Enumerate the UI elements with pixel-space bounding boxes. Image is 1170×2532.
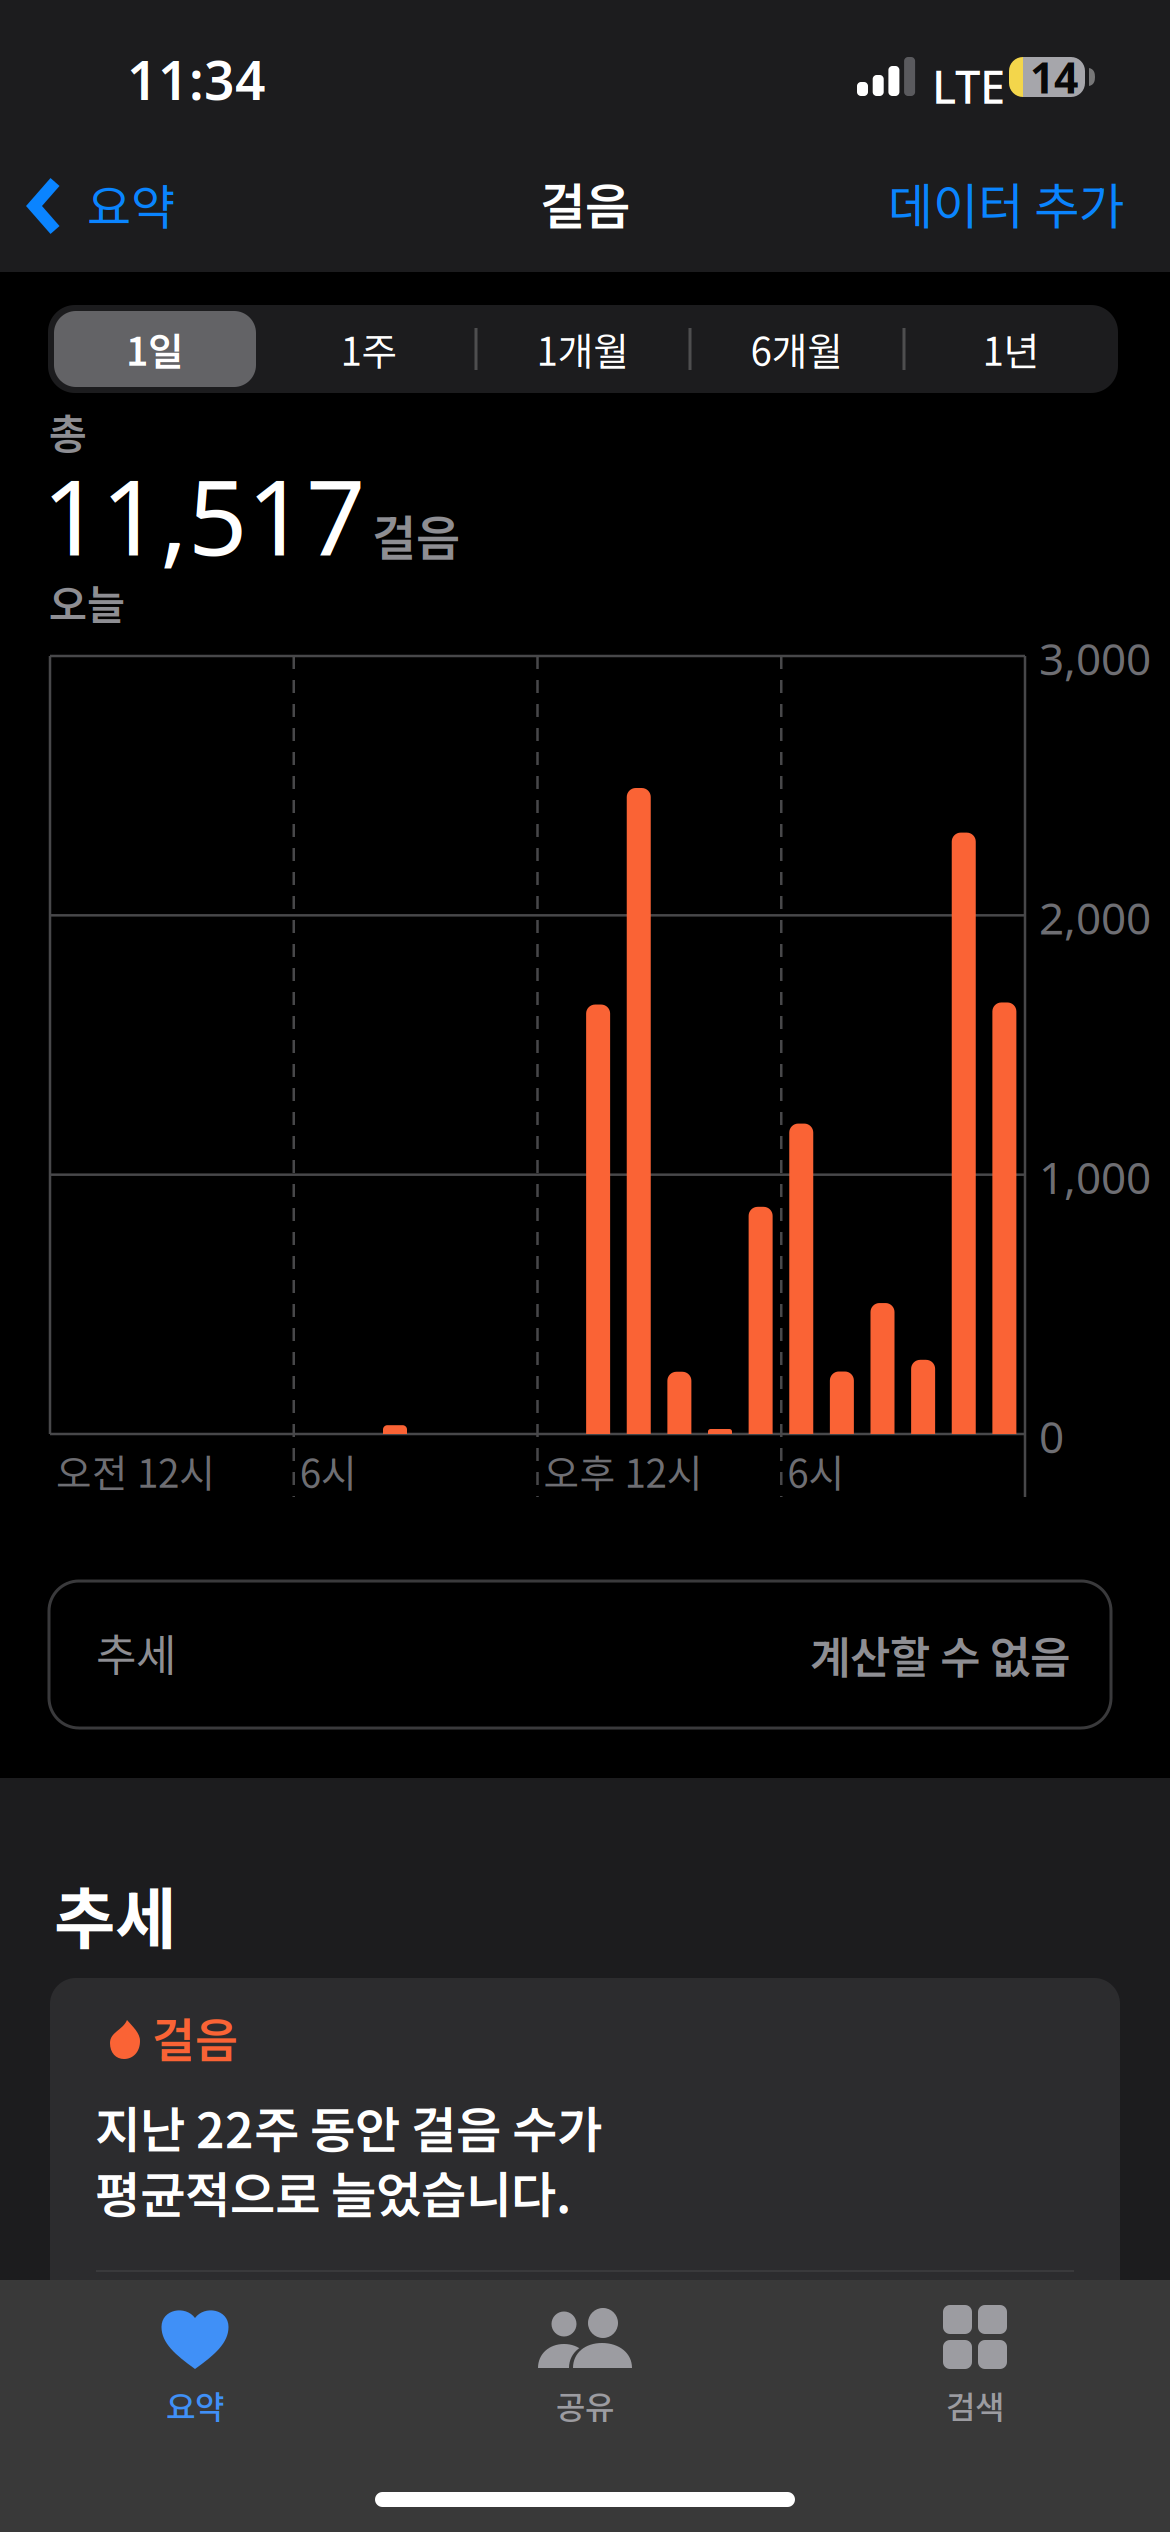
button[interactable]: 1년 [904,305,1118,393]
staticText: 11,517 [42,446,365,584]
staticText: 오늘 [49,572,125,632]
staticText: 요약 [166,2382,224,2428]
button[interactable]: 1주 [262,305,476,393]
button[interactable]: 1일 [48,305,262,393]
staticText: 총 [49,401,87,461]
staticText: 1,000 [1039,1148,1151,1206]
button[interactable]: 6개월 [690,305,904,393]
button[interactable]: 걸음 [50,1978,1120,2398]
staticText: 계산할 수 없음 [810,1623,1070,1686]
button[interactable]: 요약 [0,148,200,266]
staticText: 공유 [556,2382,614,2428]
button[interactable]: 1개월 [476,305,690,393]
button[interactable]: 검색 [780,2302,1170,2462]
staticText: 1년 [982,321,1039,377]
staticText: 14 [1030,49,1078,105]
staticText: 1주 [340,321,397,377]
staticText: 지난 22주 동안 걸음 수가 [95,2091,602,2162]
staticText: 걸음 [540,167,630,239]
staticText: 6개월 [750,321,843,377]
button[interactable]: 요약 [0,2302,390,2462]
button[interactable]: 공유 [390,2302,780,2462]
staticText: 추세 [54,1866,176,1962]
staticText: 1일 [126,321,184,377]
staticText: 검색 [946,2382,1004,2428]
staticText: 1개월 [536,321,629,377]
staticText: 6시 [300,1443,357,1499]
button[interactable]: 데이터 추가 [864,148,1170,266]
staticText: LTE [932,56,1005,116]
staticText: 6시 [787,1443,844,1499]
staticText: 걸음 [372,500,460,569]
staticText: 0 [1039,1407,1064,1465]
staticText: 추세 [96,1620,176,1684]
staticText: 데이터 추가 [888,167,1124,239]
staticText: 오후 12시 [543,1443,702,1499]
staticText: 3,000 [1039,629,1151,687]
staticText: 11:34 [127,44,266,115]
staticText: 오전 12시 [56,1443,215,1499]
staticText: 평균적으로 늘었습니다. [95,2156,571,2227]
button[interactable]: 추세 [49,1581,1111,1728]
staticText: 2,000 [1039,888,1151,947]
staticText: 걸음 [152,2003,238,2071]
staticText: 요약 [87,169,175,238]
